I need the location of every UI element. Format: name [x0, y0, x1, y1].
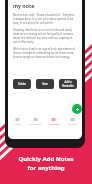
staticText: for anything — [27, 164, 65, 172]
staticText: Reminders — [48, 123, 60, 126]
staticText: Save — [42, 82, 48, 86]
button[interactable]: Home — [8, 117, 26, 126]
staticText: No one ever said, "I have a bucket list"… — [13, 13, 77, 25]
staticText: Add a Reminder — [62, 80, 74, 88]
button[interactable]: Delete — [13, 79, 31, 89]
staticText: Account — [68, 123, 77, 126]
staticText: Delete — [18, 82, 26, 86]
staticText: Quickly Add Notes — [18, 155, 74, 163]
button[interactable]: Add a Reminder — [59, 79, 77, 89]
button[interactable]: Save — [36, 79, 54, 89]
staticText: my note — [13, 2, 35, 9]
button[interactable]: Documents — [26, 117, 44, 126]
staticText: Knowing that there is so much to do and … — [13, 28, 77, 44]
staticText: Home — [14, 123, 21, 126]
button[interactable]: Reminders — [44, 117, 63, 126]
button[interactable]: Account — [63, 117, 82, 126]
staticText: Documents — [29, 123, 42, 126]
staticText: We've never lived in an age of such abun… — [13, 47, 77, 59]
button[interactable]: Add note — [72, 104, 82, 114]
